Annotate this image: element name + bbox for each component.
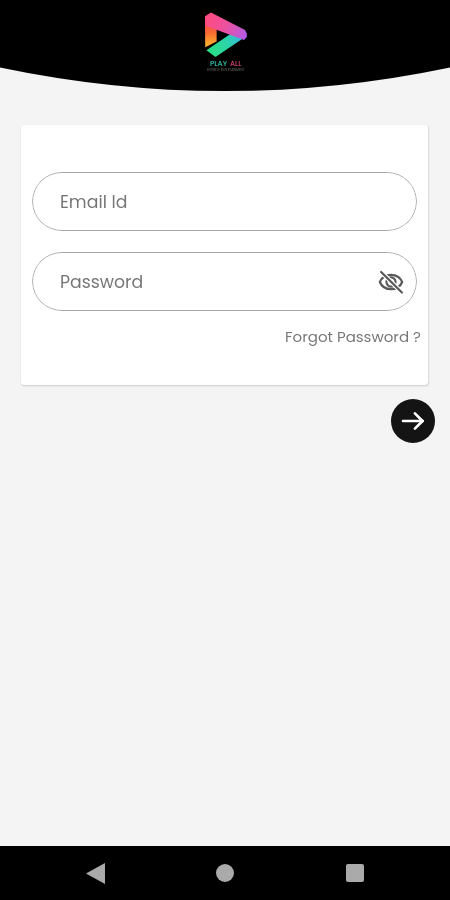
button[interactable]: Home [201, 849, 249, 897]
button[interactable]: Password [32, 252, 417, 311]
button[interactable]: Email Id [32, 172, 417, 231]
staticText: Forgot Password ? [285, 326, 421, 347]
staticText: ENTIRELY ENTERTAINMENT [207, 68, 245, 72]
staticText: Email Id [60, 190, 128, 214]
button[interactable]: Back [71, 849, 119, 897]
staticText: Password [60, 270, 144, 294]
button[interactable]: Recents [331, 849, 379, 897]
staticText: ALL [230, 58, 242, 68]
staticText: PLAY [210, 58, 228, 68]
button[interactable]: Forgot Password ? [283, 323, 423, 350]
button[interactable]: Continue [391, 399, 435, 443]
button[interactable]: Toggle password visibility [378, 269, 404, 295]
